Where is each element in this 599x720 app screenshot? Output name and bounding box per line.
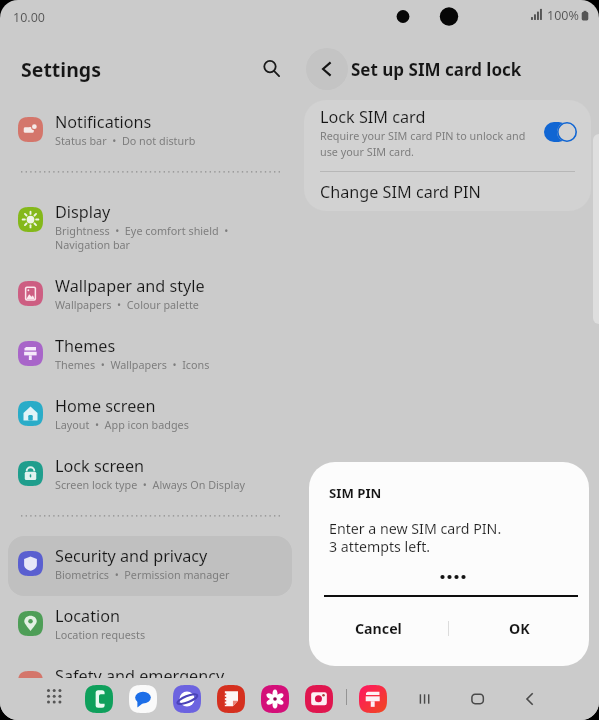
button[interactable]: Notes xyxy=(217,685,245,713)
button[interactable]: Back xyxy=(521,686,547,712)
staticText: Screen lock type • Always On Display xyxy=(55,477,245,492)
staticText: Status bar • Do not disturb xyxy=(55,133,196,148)
button[interactable]: Phone xyxy=(85,685,113,713)
button[interactable]: Messages xyxy=(129,685,157,713)
staticText: SIM PIN xyxy=(329,484,382,502)
staticText: Cancel xyxy=(355,619,402,638)
button[interactable]: Camera xyxy=(305,685,333,713)
button[interactable]: Security and privacy xyxy=(8,536,292,596)
button[interactable]: Recents xyxy=(415,686,441,712)
button[interactable]: Themes xyxy=(359,685,387,713)
button[interactable]: All apps xyxy=(41,683,67,709)
staticText: 10.00 xyxy=(13,9,45,26)
button[interactable]: Internet xyxy=(173,685,201,713)
button[interactable]: Search xyxy=(256,53,286,83)
button[interactable]: Wallpaper and style xyxy=(8,266,292,326)
staticText: Set up SIM card lock xyxy=(351,58,522,81)
staticText: OK xyxy=(509,619,530,638)
staticText: Enter a new SIM card PIN. 3 attempts lef… xyxy=(329,519,502,556)
staticText: Location xyxy=(55,605,120,627)
staticText: Biometrics • Permission manager xyxy=(55,567,230,582)
button[interactable]: Home xyxy=(468,686,494,712)
button[interactable]: Change SIM card PIN xyxy=(304,172,591,211)
button[interactable]: Cancel xyxy=(309,606,448,651)
button[interactable]: Home screen xyxy=(8,386,292,446)
staticText: Wallpapers • Colour palette xyxy=(55,297,199,312)
staticText: Themes xyxy=(55,335,116,357)
button[interactable]: Safety and emergency xyxy=(8,656,292,716)
staticText: 100% xyxy=(547,7,579,24)
staticText: Layout • App icon badges xyxy=(55,417,189,432)
staticText: Themes • Wallpapers • Icons xyxy=(55,357,210,372)
staticText: Security and privacy xyxy=(55,545,208,567)
button[interactable]: Gallery xyxy=(261,685,289,713)
staticText: Settings xyxy=(21,56,101,83)
button[interactable]: OK xyxy=(449,606,589,651)
staticText: Safety and emergency xyxy=(55,665,225,687)
staticText: Notifications xyxy=(55,111,152,133)
staticText: Display xyxy=(55,201,111,223)
staticText: Location requests xyxy=(55,627,146,642)
staticText: Brightness • Eye comfort shield • Naviga… xyxy=(55,223,229,252)
staticText: Change SIM card PIN xyxy=(320,181,481,203)
button[interactable]: Lock SIM card toggle xyxy=(544,122,577,142)
button[interactable]: Lock screen xyxy=(8,446,292,506)
button[interactable]: Display xyxy=(8,192,292,266)
staticText: Wallpaper and style xyxy=(55,275,205,297)
staticText: Require your SIM card PIN to unlock and … xyxy=(320,128,526,159)
button[interactable]: Notifications xyxy=(8,102,292,162)
button[interactable]: Back xyxy=(306,48,348,90)
staticText: Lock SIM card xyxy=(320,106,426,128)
button[interactable]: Themes xyxy=(8,326,292,386)
button[interactable]: Lock SIM card xyxy=(304,100,591,171)
button[interactable]: Location xyxy=(8,596,292,656)
staticText: Lock screen xyxy=(55,455,145,477)
staticText: Home screen xyxy=(55,395,156,417)
